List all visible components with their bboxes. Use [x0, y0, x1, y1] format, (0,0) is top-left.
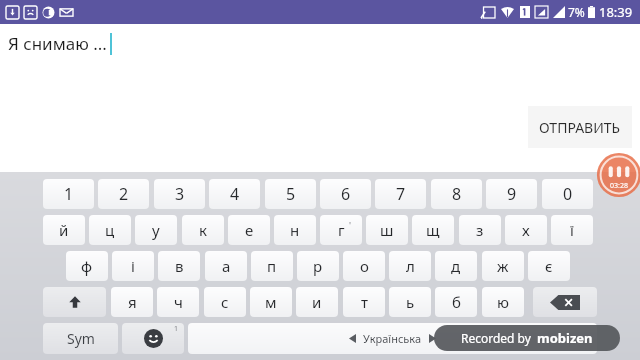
- button[interactable]: Emoji: [122, 323, 184, 354]
- staticText: Recorded by: [461, 330, 531, 346]
- staticText: Українська: [363, 331, 422, 346]
- staticText: 4: [230, 183, 240, 205]
- staticText: о: [360, 256, 369, 276]
- staticText: у: [152, 220, 160, 240]
- button[interactable]: 2: [98, 179, 149, 209]
- button[interactable]: ж: [482, 251, 524, 281]
- staticText: ф: [81, 256, 93, 276]
- staticText: д: [451, 256, 461, 276]
- button[interactable]: с: [204, 287, 246, 317]
- staticText: ОТПРАВИТЬ: [539, 118, 621, 137]
- staticText: ї: [570, 220, 574, 240]
- staticText: н: [290, 220, 300, 240]
- staticText: mobizen: [537, 329, 593, 347]
- button[interactable]: ю: [482, 287, 524, 317]
- button[interactable]: в: [158, 251, 200, 281]
- button[interactable]: 4: [209, 179, 260, 209]
- staticText: б: [452, 292, 461, 312]
- button[interactable]: к: [182, 215, 224, 245]
- staticText: я: [128, 292, 137, 312]
- button[interactable]: и: [296, 287, 338, 317]
- button[interactable]: є: [528, 251, 570, 281]
- staticText: м: [265, 292, 277, 312]
- button[interactable]: д: [435, 251, 477, 281]
- staticText: ч: [174, 292, 183, 312]
- button[interactable]: щ: [412, 215, 454, 245]
- button[interactable]: г: [320, 215, 362, 245]
- staticText: 0: [563, 183, 573, 205]
- staticText: е: [245, 220, 254, 240]
- staticText: г: [338, 220, 345, 240]
- staticText: ц: [105, 220, 115, 240]
- button[interactable]: х: [505, 215, 547, 245]
- staticText: 1: [174, 324, 179, 334]
- staticText: 9: [507, 183, 517, 205]
- staticText: й: [59, 220, 69, 240]
- staticText: 03:28: [610, 181, 628, 191]
- button[interactable]: б: [435, 287, 477, 317]
- button[interactable]: л: [389, 251, 431, 281]
- button[interactable]: 8: [431, 179, 482, 209]
- staticText: ю: [497, 292, 509, 312]
- button[interactable]: ОТПРАВИТЬ: [528, 106, 632, 148]
- staticText: 3: [175, 183, 185, 205]
- button[interactable]: ї: [551, 215, 593, 245]
- button[interactable]: 6: [320, 179, 371, 209]
- staticText: л: [406, 256, 415, 276]
- staticText: 2: [119, 183, 129, 205]
- button[interactable]: 3: [154, 179, 205, 209]
- button[interactable]: Українська: [188, 323, 597, 354]
- button[interactable]: й: [43, 215, 85, 245]
- button[interactable]: у: [135, 215, 177, 245]
- staticText: ш: [380, 220, 394, 240]
- button[interactable]: е: [228, 215, 270, 245]
- button[interactable]: Shift: [43, 287, 106, 317]
- staticText: в: [175, 256, 184, 276]
- staticText: 8: [452, 183, 462, 205]
- staticText: 6: [341, 183, 351, 205]
- button[interactable]: і: [112, 251, 154, 281]
- staticText: є: [545, 256, 553, 276]
- staticText: і: [131, 256, 135, 276]
- button[interactable]: ч: [157, 287, 199, 317]
- staticText: с: [221, 292, 229, 312]
- button[interactable]: ь: [389, 287, 431, 317]
- button[interactable]: Sym: [43, 323, 118, 354]
- button[interactable]: п: [251, 251, 293, 281]
- button[interactable]: 7: [375, 179, 426, 209]
- staticText: 1: [64, 183, 74, 205]
- button[interactable]: ц: [89, 215, 131, 245]
- staticText: Я снимаю ...: [8, 32, 107, 55]
- button[interactable]: р: [297, 251, 339, 281]
- staticText: т: [361, 292, 368, 312]
- staticText: щ: [426, 220, 440, 240]
- staticText: и: [312, 292, 322, 312]
- button[interactable]: я: [111, 287, 153, 317]
- staticText: п: [267, 256, 277, 276]
- button[interactable]: 5: [265, 179, 316, 209]
- staticText: 7%: [568, 4, 585, 20]
- staticText: ж: [497, 256, 509, 276]
- button[interactable]: з: [459, 215, 501, 245]
- button[interactable]: н: [274, 215, 316, 245]
- staticText: к: [199, 220, 207, 240]
- staticText: з: [476, 220, 484, 240]
- button[interactable]: о: [343, 251, 385, 281]
- staticText: а: [222, 256, 231, 276]
- button[interactable]: Backspace: [533, 287, 597, 317]
- staticText: ь: [406, 292, 415, 312]
- staticText: Sym: [67, 329, 95, 348]
- staticText: р: [313, 256, 323, 276]
- button[interactable]: т: [343, 287, 385, 317]
- staticText: 5: [286, 183, 296, 205]
- button[interactable]: 9: [486, 179, 537, 209]
- staticText: ': [349, 219, 352, 231]
- button[interactable]: 0: [542, 179, 593, 209]
- button[interactable]: м: [250, 287, 292, 317]
- staticText: 18:39: [599, 3, 633, 21]
- staticText: 7: [396, 183, 406, 205]
- button[interactable]: ф: [66, 251, 108, 281]
- button[interactable]: 1: [43, 179, 94, 209]
- button[interactable]: ш: [366, 215, 408, 245]
- button[interactable]: а: [205, 251, 247, 281]
